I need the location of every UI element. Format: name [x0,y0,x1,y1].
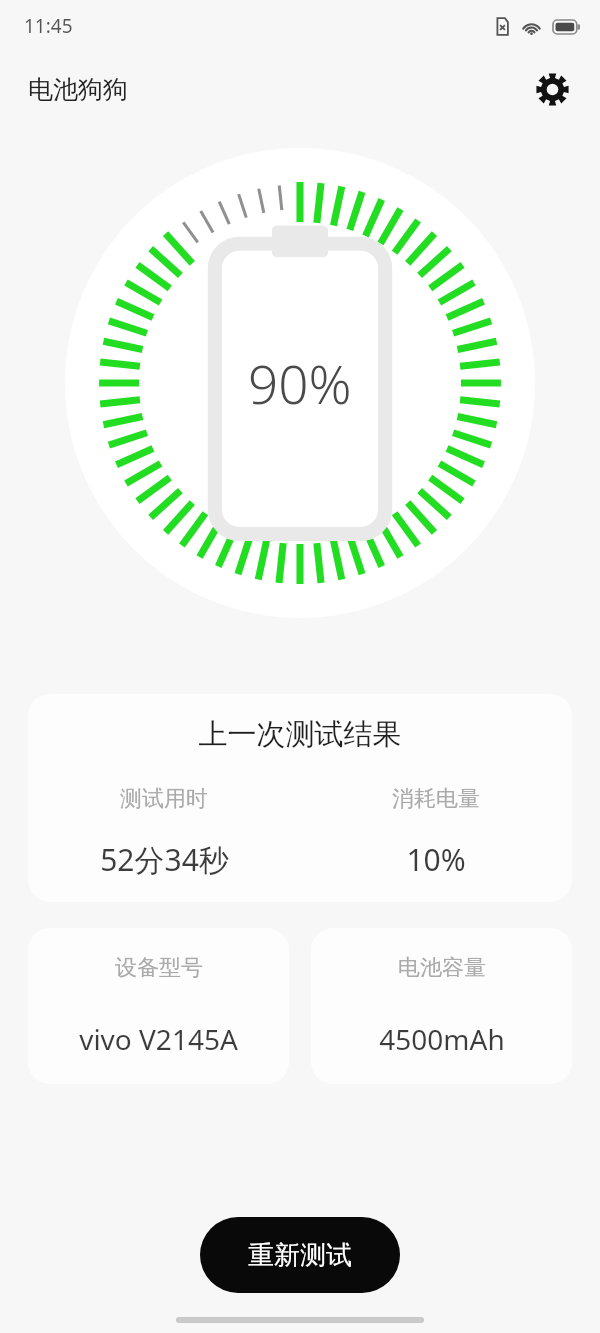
staticText: 4500mAh [379,1020,505,1058]
staticText: 10% [406,839,466,880]
button[interactable]: 上一次测试结果 [28,694,572,902]
staticText: 52分34秒 [100,839,229,880]
button[interactable]: 设备型号 [28,928,289,1084]
staticText: 电池狗狗 [28,74,128,105]
staticText: 设备型号 [115,954,203,982]
staticText: 重新测试 [248,1239,352,1272]
staticText: 消耗电量 [392,785,480,813]
button[interactable]: Settings [528,65,576,113]
staticText: 90% [248,347,352,419]
staticText: 测试用时 [120,785,208,813]
staticText: 电池容量 [398,954,486,982]
staticText: 11:45 [24,13,73,39]
button[interactable]: 重新测试 [200,1217,400,1293]
staticText: vivo V2145A [79,1020,238,1058]
staticText: 上一次测试结果 [28,716,572,753]
button[interactable]: 电池容量 [311,928,572,1084]
